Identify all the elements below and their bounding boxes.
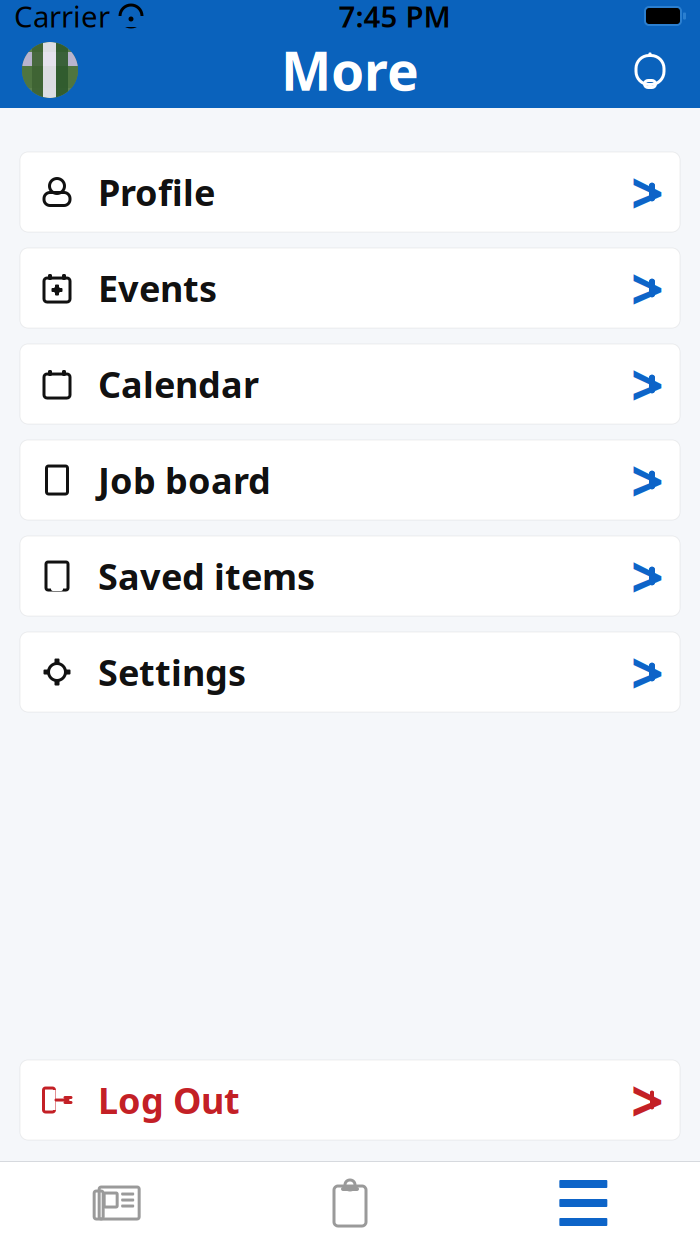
staticText: Carrier [14,0,110,35]
button[interactable]: Log Out [20,1060,680,1140]
button[interactable]: Job board [20,440,680,520]
button[interactable]: More [467,1162,700,1244]
staticText: Saved items [98,552,315,600]
button[interactable]: Settings [20,632,680,712]
staticText: > [631,634,664,710]
button[interactable]: Profile [20,152,680,232]
staticText: Settings [98,648,246,696]
button[interactable]: Events [20,248,680,328]
staticText: > [631,346,664,422]
staticText: 7:45 PM [338,0,450,35]
staticText: More [281,35,419,105]
staticText: > [631,250,664,326]
staticText: Events [98,264,217,312]
staticText: > [631,154,664,230]
button[interactable]: News [0,1162,233,1244]
staticText: > [631,1062,664,1138]
button[interactable]: Profile photo [22,42,78,98]
staticText: > [631,538,664,614]
staticText: Job board [98,456,271,504]
button[interactable]: Calendar [20,344,680,424]
button[interactable]: Saved items [20,536,680,616]
staticText: Calendar [98,360,259,408]
staticText: Profile [98,168,215,216]
staticText: > [631,442,664,518]
button[interactable]: Board [233,1162,467,1244]
button[interactable]: Notifications [622,42,678,98]
staticText: Log Out [98,1076,240,1124]
